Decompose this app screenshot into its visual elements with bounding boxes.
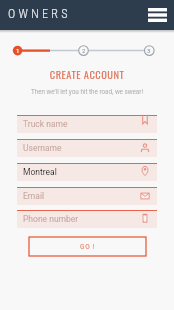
button[interactable]: Phone number bbox=[17, 210, 157, 228]
staticText: Montreal bbox=[23, 167, 57, 177]
button[interactable]: Username bbox=[17, 139, 157, 157]
staticText: Phone number bbox=[23, 214, 79, 224]
staticText: 2 bbox=[82, 47, 86, 54]
button[interactable]: Menu bbox=[146, 4, 168, 26]
button[interactable]: Montreal bbox=[17, 163, 157, 181]
button[interactable]: Email bbox=[17, 187, 157, 205]
staticText: Email bbox=[23, 191, 45, 201]
button[interactable]: 3 bbox=[143, 44, 155, 57]
staticText: 3 bbox=[147, 47, 151, 54]
staticText: 1 bbox=[16, 47, 20, 54]
staticText: GO ! bbox=[80, 243, 95, 251]
button[interactable]: 2 bbox=[78, 44, 90, 57]
button[interactable]: Truck name bbox=[17, 115, 157, 133]
button[interactable]: 1 bbox=[12, 44, 24, 57]
staticText: Then we'll let you hit the road, we swea… bbox=[0, 88, 174, 95]
staticText: Truck name bbox=[23, 119, 68, 129]
staticText: CREATE ACCOUNT bbox=[0, 66, 174, 82]
button[interactable]: GO ! bbox=[29, 237, 146, 256]
staticText: Username bbox=[23, 143, 62, 153]
staticText: OWNERS bbox=[8, 7, 71, 21]
